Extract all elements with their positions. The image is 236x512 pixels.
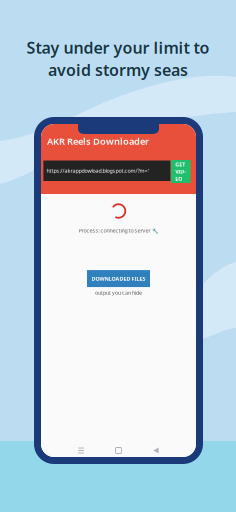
button[interactable]: GET VIDEO (171, 160, 190, 183)
staticText: Process: connecting to server 🔧 (78, 227, 158, 234)
staticText: output you can hide (95, 289, 142, 296)
staticText: GET VIDEO (175, 161, 186, 182)
button[interactable]: Home (100, 446, 137, 454)
button[interactable]: Back (137, 446, 175, 454)
button[interactable]: Menu (62, 446, 100, 454)
staticText: Stay under your limit to (26, 37, 209, 58)
button[interactable]: DOWNLOADED FILES (87, 270, 150, 287)
staticText: https://akrappdowload.blogspot.com/?m=1 (46, 167, 150, 174)
staticText: avoid stormy seas (48, 59, 188, 80)
staticText: DOWNLOADED FILES (91, 275, 145, 282)
staticText: AKR Reels Downloader (47, 135, 149, 147)
